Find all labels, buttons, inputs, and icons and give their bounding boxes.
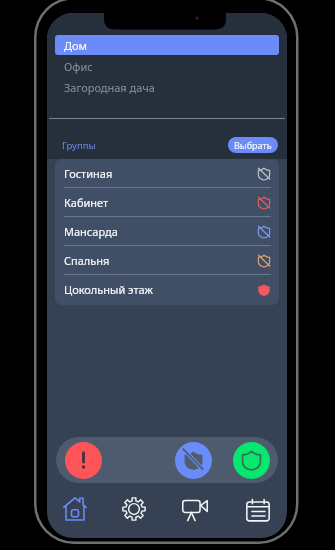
button[interactable]: Settings bbox=[122, 497, 146, 521]
button[interactable]: Home bbox=[63, 497, 87, 521]
button[interactable]: Спальня bbox=[55, 246, 279, 275]
button[interactable]: Мансарда bbox=[55, 217, 279, 246]
staticText: Дом bbox=[64, 38, 88, 53]
button[interactable]: Events bbox=[246, 497, 270, 521]
button[interactable]: Disarm bbox=[175, 442, 212, 479]
staticText: Выбрать bbox=[234, 139, 272, 151]
button[interactable]: Цокольный этаж bbox=[55, 275, 279, 304]
button[interactable]: Кабинет bbox=[55, 188, 279, 217]
staticText: Спальня bbox=[64, 253, 110, 268]
button[interactable]: Офис bbox=[55, 56, 279, 76]
button[interactable]: Alarm bbox=[65, 442, 102, 479]
staticText: Загородная дача bbox=[64, 80, 155, 95]
button[interactable]: Загородная дача bbox=[55, 77, 279, 97]
button[interactable]: Выбрать bbox=[228, 137, 278, 153]
staticText: Кабинет bbox=[64, 195, 109, 210]
staticText: Офис bbox=[64, 59, 93, 74]
button[interactable]: Cameras bbox=[183, 497, 207, 521]
staticText: Гостиная bbox=[64, 166, 113, 181]
button[interactable]: Дом bbox=[55, 35, 279, 55]
staticText: Мансарда bbox=[64, 224, 118, 239]
button[interactable]: Гостиная bbox=[55, 159, 279, 188]
staticText: Цокольный этаж bbox=[64, 282, 153, 297]
button[interactable]: Arm bbox=[233, 442, 270, 479]
staticText: Группы bbox=[62, 139, 96, 152]
